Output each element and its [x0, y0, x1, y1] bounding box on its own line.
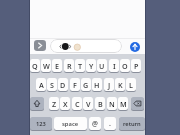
button[interactable]: R [64, 59, 74, 72]
staticText: S [50, 80, 54, 90]
button[interactable]: return [119, 117, 145, 130]
staticText: G [83, 80, 89, 90]
button[interactable]: 123 [30, 117, 52, 130]
staticText: C [75, 99, 80, 109]
button[interactable]: B [95, 97, 105, 110]
staticText: L [129, 80, 133, 90]
button[interactable]: S [47, 78, 57, 91]
staticText: O [122, 61, 128, 71]
button[interactable]: A [36, 78, 46, 91]
staticText: Z [52, 99, 57, 109]
staticText: X [63, 99, 68, 109]
button[interactable] [131, 97, 144, 110]
staticText: Q [32, 61, 38, 71]
button[interactable]: @ [89, 117, 101, 130]
button[interactable]: H [92, 78, 102, 91]
button[interactable]: I [109, 59, 119, 72]
staticText: B [98, 99, 103, 109]
button[interactable]: J [104, 78, 114, 91]
button[interactable]: N [107, 97, 117, 110]
staticText: D [60, 80, 66, 90]
staticText: R [67, 61, 72, 71]
button[interactable]: D [58, 78, 68, 91]
button[interactable]: space [54, 117, 87, 130]
button[interactable]: V [83, 97, 93, 110]
staticText: return [123, 120, 141, 128]
staticText: A [39, 80, 44, 90]
button[interactable] [130, 42, 140, 52]
button[interactable] [34, 40, 46, 51]
button[interactable]: P [131, 59, 141, 72]
button[interactable] [30, 97, 44, 110]
button[interactable]: F [70, 78, 80, 91]
button[interactable]: M [118, 97, 128, 110]
button[interactable]: . [104, 117, 116, 130]
staticText: 123 [36, 120, 46, 128]
staticText: space [62, 120, 79, 128]
staticText: U [99, 61, 105, 71]
button[interactable]: L [126, 78, 136, 91]
button[interactable]: X [60, 97, 70, 110]
button[interactable]: O [120, 59, 130, 72]
staticText: V [86, 99, 91, 109]
button[interactable]: E [52, 59, 62, 72]
button[interactable]: G [81, 78, 91, 91]
staticText: Y [89, 61, 94, 71]
staticText: . [109, 119, 111, 129]
button[interactable]: W [41, 59, 51, 72]
button[interactable]: U [97, 59, 107, 72]
staticText: T [78, 61, 83, 71]
staticText: K [118, 80, 123, 90]
staticText: W [43, 61, 50, 71]
button[interactable]: Q [30, 59, 40, 72]
button[interactable]: K [115, 78, 125, 91]
staticText: M [120, 99, 127, 109]
staticText: H [94, 80, 100, 90]
staticText: E [55, 61, 60, 71]
staticText: J [108, 80, 111, 90]
staticText: P [134, 61, 139, 71]
staticText: @ [92, 119, 98, 128]
button[interactable] [50, 39, 122, 53]
button[interactable]: C [72, 97, 82, 110]
button[interactable]: Y [86, 59, 96, 72]
staticText: N [109, 99, 115, 109]
staticText: I [113, 61, 116, 71]
button[interactable]: Z [49, 97, 59, 110]
staticText: F [73, 80, 77, 90]
button[interactable]: T [75, 59, 85, 72]
